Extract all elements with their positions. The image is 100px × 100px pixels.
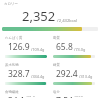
- staticText: 脂質: [53, 36, 60, 40]
- staticText: カロリー: [4, 2, 18, 6]
- staticText: 糖質: [53, 63, 60, 67]
- staticText: 34.1: [8, 95, 25, 98]
- staticText: /2,432kcal: [56, 18, 78, 24]
- staticText: /109.4g: [30, 47, 45, 52]
- staticText: /334.4g: [30, 74, 45, 79]
- staticText: 126.9: [8, 41, 30, 53]
- staticText: 292.4: [56, 68, 78, 80]
- button[interactable]: 食物繊維: [2, 90, 50, 98]
- button[interactable]: 糖質: [50, 63, 98, 85]
- staticText: 塩分: [53, 90, 60, 94]
- staticText: たんぱく質: [5, 36, 23, 40]
- staticText: /73.0g: [73, 47, 86, 52]
- button[interactable]: たんぱく質: [2, 36, 50, 58]
- button[interactable]: カロリー: [2, 2, 98, 31]
- staticText: 2,352: [22, 7, 56, 25]
- button[interactable]: 塩分: [50, 90, 98, 98]
- staticText: /313.4g: [78, 74, 93, 79]
- staticText: 65.8: [56, 41, 73, 53]
- button[interactable]: 脂質: [50, 36, 98, 58]
- staticText: 7.54: [56, 95, 73, 98]
- staticText: 328.7: [8, 68, 30, 80]
- staticText: /7.50g: [73, 95, 86, 97]
- button[interactable]: 炭水化物: [2, 63, 50, 85]
- staticText: /21.0g: [25, 95, 38, 97]
- staticText: 炭水化物: [5, 63, 19, 67]
- staticText: 食物繊維: [5, 90, 19, 94]
